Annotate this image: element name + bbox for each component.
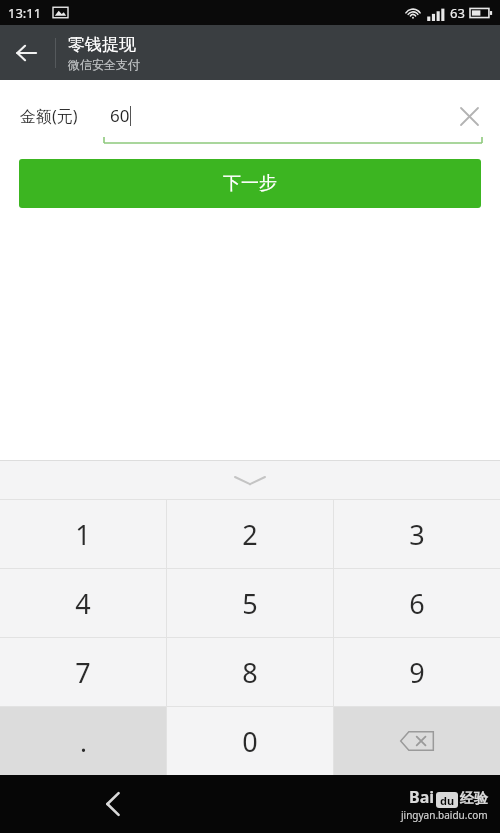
button[interactable]: Back <box>90 781 136 827</box>
staticText: 4 <box>75 585 91 622</box>
button[interactable]: Clear <box>452 99 486 133</box>
staticText: jingyan.baidu.com <box>401 808 488 822</box>
staticText: 6 <box>409 585 425 622</box>
button[interactable]: Back <box>0 27 52 79</box>
staticText: 0 <box>242 723 258 760</box>
button[interactable]: . <box>0 707 166 775</box>
staticText: 3 <box>409 516 425 553</box>
button[interactable]: 5 <box>167 569 333 637</box>
staticText: 金额(元) <box>20 105 78 127</box>
button[interactable]: 7 <box>0 638 166 706</box>
staticText: 8 <box>242 654 258 691</box>
button[interactable]: 4 <box>0 569 166 637</box>
button[interactable]: 0 <box>167 707 333 775</box>
staticText: 微信安全支付 <box>68 57 140 72</box>
button[interactable]: 6 <box>334 569 500 637</box>
staticText: 1 <box>75 516 91 553</box>
staticText: du <box>440 793 455 808</box>
button[interactable]: 3 <box>334 500 500 568</box>
staticText: 2 <box>242 516 258 553</box>
staticText: Bai <box>409 786 435 808</box>
staticText: 经验 <box>460 790 488 808</box>
staticText: 13:11 <box>8 4 42 22</box>
button[interactable]: 9 <box>334 638 500 706</box>
staticText: . <box>80 724 87 759</box>
staticText: 60 <box>110 104 130 127</box>
staticText: 7 <box>75 654 91 691</box>
staticText: 63 <box>450 4 465 22</box>
staticText: 9 <box>409 654 425 691</box>
button[interactable]: 下一步 <box>19 159 481 208</box>
button[interactable]: Backspace <box>334 707 500 775</box>
button[interactable]: 2 <box>167 500 333 568</box>
button[interactable]: 8 <box>167 638 333 706</box>
button[interactable]: 1 <box>0 500 166 568</box>
staticText: 零钱提现 <box>68 34 136 55</box>
staticText: 5 <box>242 585 258 622</box>
staticText: 下一步 <box>223 172 277 195</box>
